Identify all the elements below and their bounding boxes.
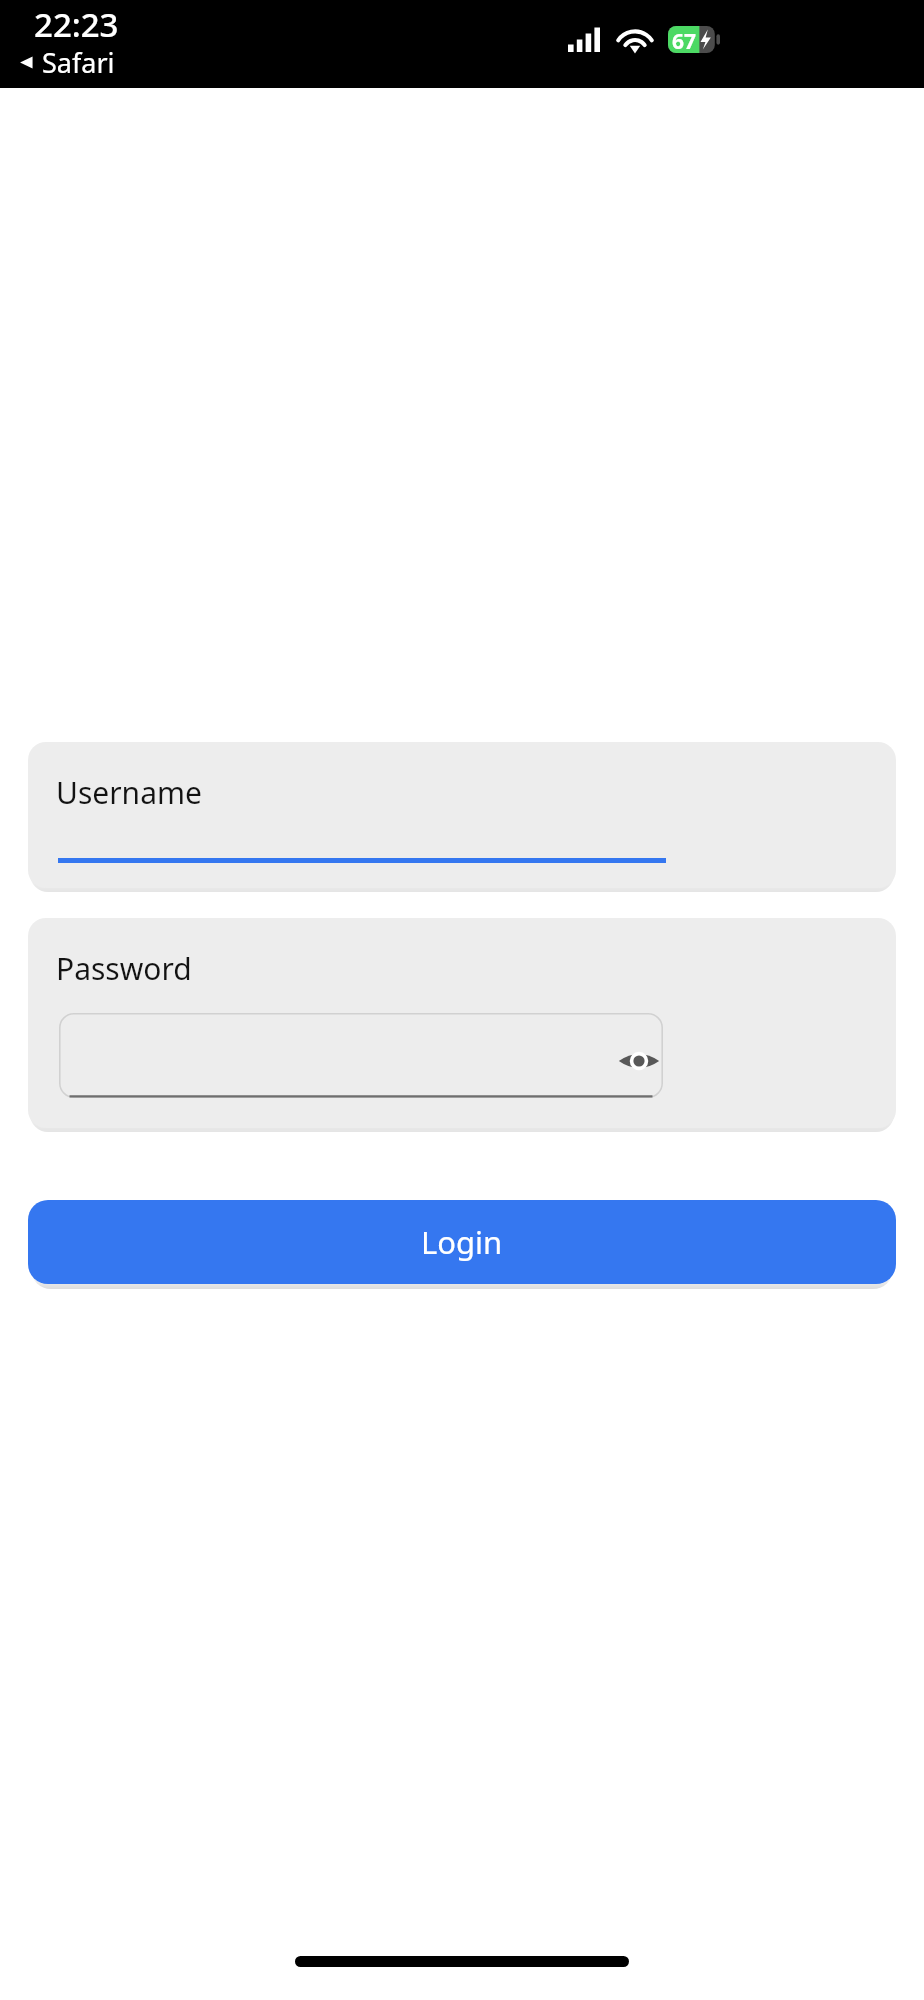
staticText: Safari [42,44,115,81]
button[interactable]: Show password [614,1036,664,1086]
button[interactable]: Login [28,1200,896,1284]
staticText: Username [56,772,202,813]
staticText: 67 [672,27,697,54]
staticText: 22:23 [34,2,119,47]
button[interactable]: Username [28,742,896,888]
staticText: Password [56,948,192,989]
staticText: Login [421,1221,503,1263]
button[interactable]: Password [28,918,896,1128]
